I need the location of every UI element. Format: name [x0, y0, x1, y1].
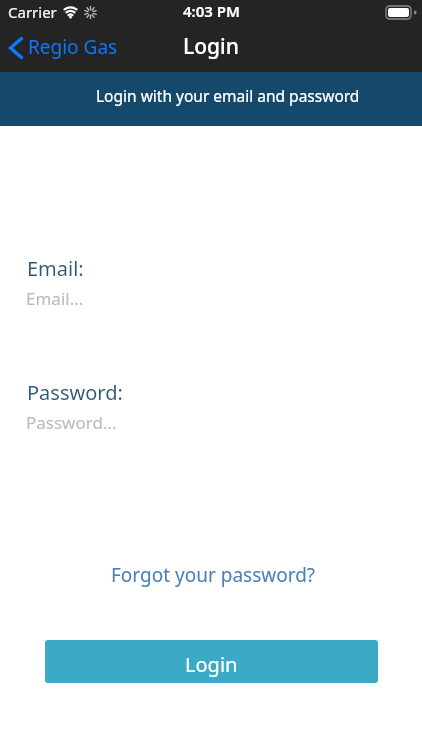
staticText: Email: — [27, 255, 84, 282]
staticText: Forgot your password? — [111, 562, 316, 588]
button[interactable]: Forgot your password? — [111, 562, 316, 588]
button[interactable]: Regio Gas — [0, 35, 118, 61]
button[interactable]: Email... — [26, 284, 396, 312]
staticText: Carrier — [8, 2, 57, 22]
staticText: Password: — [27, 379, 123, 406]
button[interactable]: Password... — [26, 408, 396, 436]
staticText: Password... — [26, 411, 117, 434]
staticText: 4:03 PM — [183, 1, 240, 21]
button[interactable]: Login — [45, 640, 378, 683]
staticText: Login with your email and password — [96, 85, 360, 106]
staticText: Regio Gas — [28, 34, 118, 60]
staticText: Login — [185, 651, 238, 678]
staticText: Email... — [26, 287, 84, 310]
staticText: Login — [183, 32, 239, 61]
